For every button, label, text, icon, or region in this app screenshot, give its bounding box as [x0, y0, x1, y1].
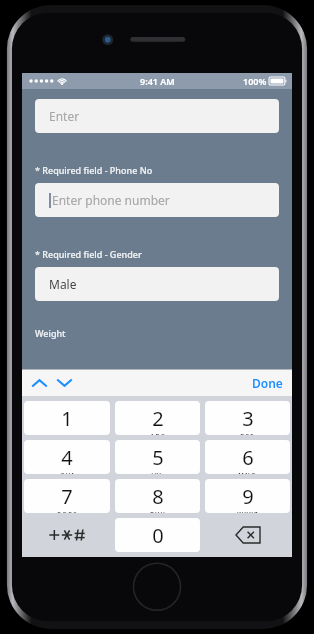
- button[interactable]: 1: [24, 401, 110, 435]
- staticText: 9:41 AM: [140, 75, 175, 87]
- staticText: GHI: [60, 471, 75, 474]
- button[interactable]: Male: [35, 267, 279, 301]
- staticText: PQRS: [57, 510, 78, 513]
- button[interactable]: Next field: [54, 372, 75, 393]
- button[interactable]: Delete: [205, 518, 290, 552]
- button[interactable]: 5: [115, 440, 200, 474]
- staticText: 2: [152, 405, 164, 432]
- staticText: 4: [61, 444, 73, 471]
- staticText: Enter phone number: [52, 192, 170, 208]
- staticText: 7: [61, 483, 73, 510]
- staticText: * Required field - Gender: [35, 248, 142, 260]
- staticText: * Required field - Phone No: [35, 164, 153, 176]
- staticText: 0: [152, 522, 164, 549]
- staticText: 3: [242, 405, 254, 432]
- staticText: 100%: [243, 75, 267, 87]
- staticText: DEF: [240, 432, 255, 435]
- button[interactable]: 7: [24, 479, 110, 513]
- button[interactable]: Enter: [35, 99, 279, 133]
- button[interactable]: 9: [205, 479, 290, 513]
- staticText: WXYZ: [237, 510, 259, 513]
- button[interactable]: 2: [115, 401, 200, 435]
- staticText: JKL: [151, 471, 164, 474]
- staticText: 1: [61, 405, 73, 432]
- staticText: Enter: [49, 108, 80, 124]
- button[interactable]: 6: [205, 440, 290, 474]
- button[interactable]: Symbols: [24, 518, 110, 552]
- staticText: 6: [242, 444, 254, 471]
- staticText: ABC: [150, 432, 166, 435]
- button[interactable]: Previous field: [29, 372, 50, 393]
- staticText: Done: [252, 375, 283, 391]
- staticText: MNO: [238, 471, 257, 474]
- button[interactable]: 4: [24, 440, 110, 474]
- staticText: 5: [152, 444, 164, 471]
- staticText: 8: [152, 483, 164, 510]
- staticText: Weight: [35, 327, 66, 339]
- staticText: TUV: [150, 510, 166, 513]
- button[interactable]: Done: [243, 369, 292, 396]
- button[interactable]: 0: [115, 518, 200, 552]
- button[interactable]: 3: [205, 401, 290, 435]
- button[interactable]: Enter phone number: [35, 183, 279, 217]
- staticText: Male: [49, 276, 77, 292]
- staticText: 9: [242, 483, 254, 510]
- button[interactable]: 8: [115, 479, 200, 513]
